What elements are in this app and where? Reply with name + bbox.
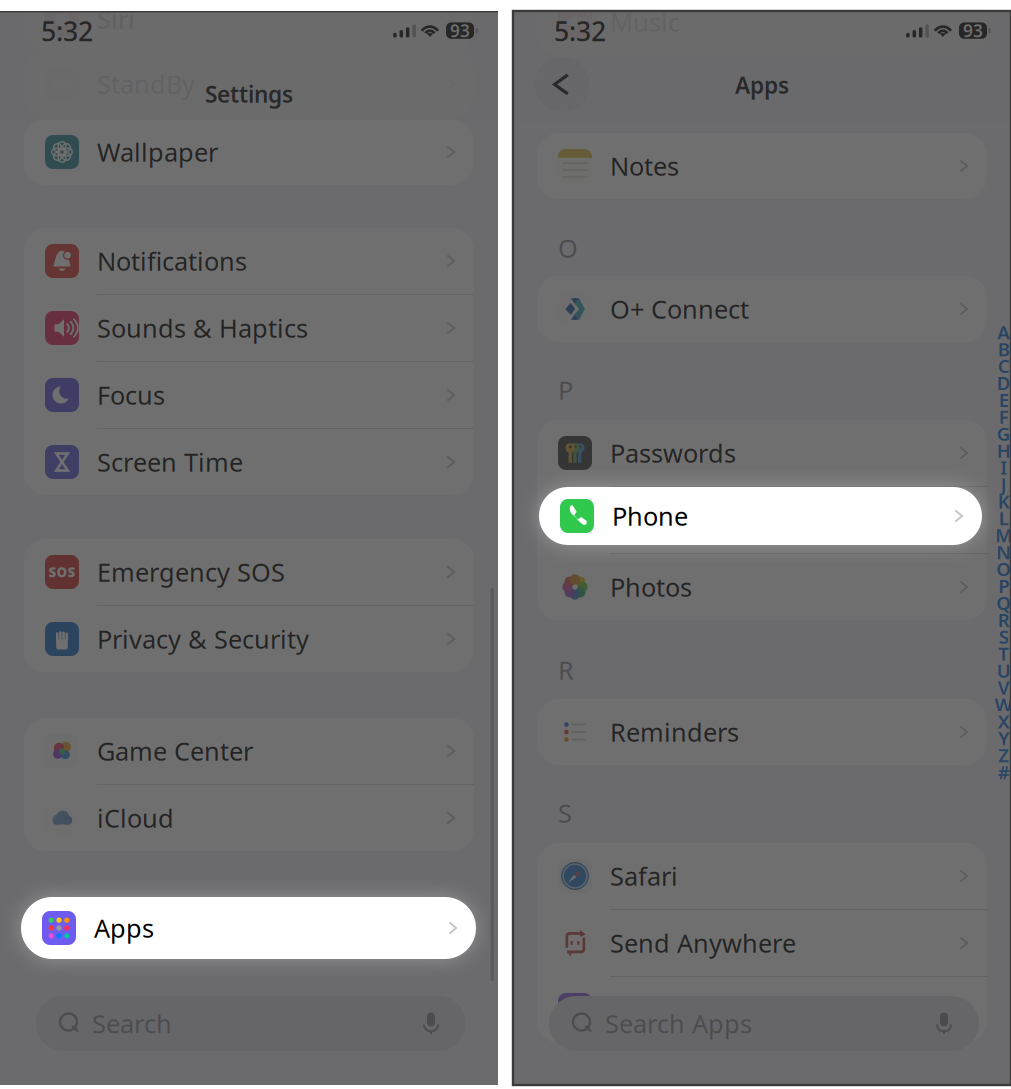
staticText: Reminders: [610, 715, 739, 749]
staticText: O: [996, 556, 1011, 581]
staticText: F: [999, 404, 1009, 429]
button[interactable]: Notes: [537, 133, 987, 199]
button[interactable]: Send Anywhere: [537, 910, 987, 976]
staticText: #: [998, 759, 1010, 784]
button[interactable]: SOS: [24, 539, 474, 605]
staticText: Phone: [612, 499, 688, 533]
staticText: 93: [450, 19, 470, 42]
staticText: Music: [610, 5, 680, 39]
staticText: Sounds & Haptics: [97, 311, 308, 345]
staticText: R: [558, 653, 574, 687]
staticText: Focus: [97, 378, 165, 412]
staticText: M: [995, 523, 1011, 547]
staticText: Notes: [610, 149, 679, 183]
staticText: J: [1001, 472, 1007, 497]
button[interactable]: Photos: [537, 554, 987, 620]
staticText: G: [997, 421, 1011, 446]
button[interactable]: Chrome: [537, 977, 987, 1043]
staticText: I: [1000, 455, 1007, 480]
staticText: Privacy & Security: [97, 622, 309, 656]
staticText: N: [996, 540, 1011, 564]
staticText: Emergency SOS: [97, 555, 285, 589]
staticText: Z: [998, 743, 1009, 767]
button[interactable]: O+ Connect: [537, 276, 987, 342]
staticText: V: [998, 675, 1010, 700]
button[interactable]: Search: [36, 996, 466, 1051]
staticText: O: [558, 231, 578, 265]
staticText: K: [998, 489, 1010, 514]
button[interactable]: Passwords: [537, 420, 987, 486]
staticText: Q: [996, 590, 1011, 615]
staticText: Wallpaper: [97, 135, 218, 169]
staticText: iCloud: [97, 801, 174, 835]
staticText: B: [998, 336, 1010, 361]
staticText: O+ Connect: [610, 292, 749, 326]
staticText: 93: [963, 19, 983, 42]
button[interactable]: Back: [534, 57, 589, 112]
button[interactable]: Phone: [537, 487, 987, 553]
staticText: Apps: [735, 70, 789, 100]
button[interactable]: Sounds & Haptics: [24, 295, 474, 361]
button[interactable]: Safari: [537, 843, 987, 909]
staticText: S: [558, 796, 572, 830]
staticText: P: [558, 373, 573, 407]
staticText: L: [999, 506, 1009, 530]
staticText: D: [997, 370, 1011, 395]
button[interactable]: Game Center: [24, 718, 474, 784]
staticText: Send Anywhere: [610, 926, 796, 960]
staticText: Phone: [610, 503, 686, 537]
staticText: Settings: [205, 79, 293, 109]
staticText: Y: [998, 726, 1009, 750]
button[interactable]: Reminders: [537, 699, 987, 765]
staticText: P: [998, 573, 1009, 598]
button[interactable]: Focus: [24, 362, 474, 428]
staticText: Apps: [94, 911, 154, 945]
staticText: H: [997, 438, 1011, 463]
button[interactable]: Privacy & Security: [24, 606, 474, 672]
button[interactable]: Screen Time: [24, 429, 474, 495]
staticText: Passwords: [610, 436, 736, 470]
button[interactable]: Apps: [21, 897, 476, 959]
staticText: Siri: [97, 2, 135, 36]
staticText: C: [998, 353, 1010, 378]
staticText: Screen Time: [97, 445, 243, 479]
staticText: S: [999, 624, 1009, 649]
staticText: Photos: [610, 570, 692, 604]
staticText: StandBy: [97, 67, 195, 101]
staticText: U: [997, 658, 1011, 683]
button[interactable]: Search Apps: [549, 996, 979, 1051]
staticText: SOS: [48, 563, 75, 581]
button[interactable]: iCloud: [24, 785, 474, 851]
staticText: Game Center: [97, 734, 253, 768]
staticText: R: [998, 607, 1010, 632]
staticText: T: [998, 641, 1009, 666]
staticText: 5:32: [554, 13, 606, 49]
staticText: E: [999, 387, 1009, 412]
staticText: W: [995, 692, 1011, 717]
staticText: X: [998, 709, 1010, 734]
button[interactable]: Phone: [539, 487, 982, 545]
staticText: Notifications: [97, 244, 247, 278]
staticText: Chrome: [610, 993, 705, 1027]
button[interactable]: Notifications: [24, 228, 474, 294]
staticText: 5:32: [41, 13, 93, 49]
staticText: A: [997, 320, 1010, 344]
button[interactable]: Wallpaper: [24, 119, 474, 185]
staticText: Safari: [610, 859, 678, 893]
staticText: Search: [92, 1007, 172, 1040]
staticText: Search Apps: [605, 1007, 752, 1040]
